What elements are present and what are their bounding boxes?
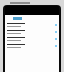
button[interactable] bbox=[5, 42, 59, 49]
button[interactable] bbox=[5, 21, 59, 28]
button[interactable] bbox=[5, 35, 59, 42]
button[interactable] bbox=[5, 28, 59, 35]
